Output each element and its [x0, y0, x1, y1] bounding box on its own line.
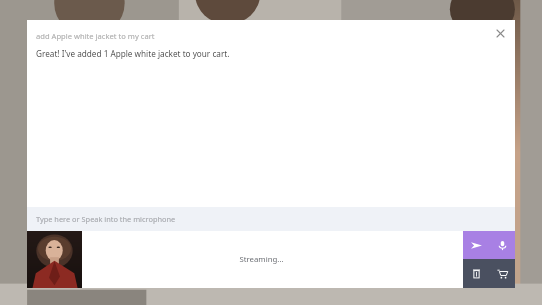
staticText: add Apple white jacket to my cart — [36, 31, 155, 41]
button[interactable]: Microphone — [489, 231, 515, 259]
staticText: Great! I've added 1 Apple white jacket t… — [36, 48, 230, 59]
staticText: Streaming... — [239, 254, 284, 265]
button[interactable]: Type here or Speak into the microphone — [27, 207, 515, 231]
button[interactable]: Cart — [489, 259, 515, 288]
button[interactable]: Delete — [463, 259, 489, 288]
staticText: Type here or Speak into the microphone — [36, 214, 176, 224]
button[interactable]: Close — [490, 23, 510, 43]
button[interactable]: Send — [463, 231, 489, 259]
